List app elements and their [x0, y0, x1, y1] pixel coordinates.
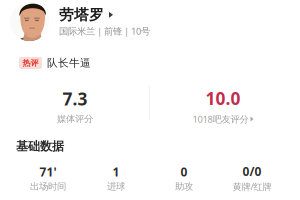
button[interactable]: 0/0 [218, 164, 286, 192]
button[interactable]: 0 [150, 164, 218, 192]
staticText: 出场时间 [30, 181, 66, 192]
staticText: 10.0 [205, 87, 240, 110]
staticText: 热评 [22, 58, 38, 68]
staticText: 队长牛逼 [47, 56, 91, 69]
staticText: 基础数据 [16, 139, 64, 154]
staticText: 助攻 [175, 181, 193, 192]
button[interactable]: 热评 [19, 56, 219, 70]
button[interactable]: 71' [14, 164, 82, 192]
button[interactable]: 1 [82, 164, 150, 192]
button[interactable]: 7.3 [15, 88, 135, 124]
staticText: 7.3 [62, 87, 87, 110]
staticText: 黄牌/红牌 [232, 180, 271, 193]
staticText: 71' [39, 164, 56, 180]
staticText: 劳塔罗 [59, 6, 104, 24]
staticText: 媒体评分 [57, 113, 93, 125]
staticText: 1 [112, 164, 119, 180]
staticText: 国际米兰 | 前锋 | 10号 [59, 25, 150, 37]
button[interactable]: 劳塔罗 [10, 2, 260, 41]
staticText: 进球 [107, 181, 125, 192]
staticText: 0 [180, 164, 187, 180]
staticText: 1018吧友评分 [192, 113, 248, 125]
button[interactable]: 10.0 [163, 88, 283, 124]
staticText: 0/0 [242, 163, 261, 179]
